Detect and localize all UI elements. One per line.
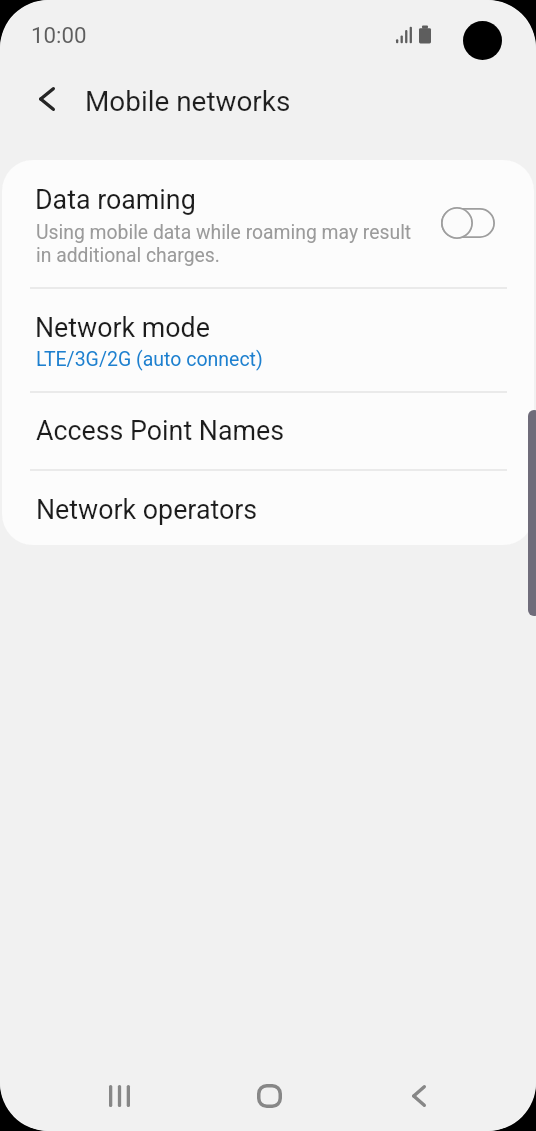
button[interactable]: Recent apps [59,1066,179,1126]
button[interactable]: Network operators [2,470,534,545]
button[interactable]: Data roaming switch, off [430,194,506,252]
staticText: Access Point Names [36,415,285,446]
button[interactable]: Data roaming [2,160,534,287]
staticText: Data roaming [35,184,196,215]
staticText: Network mode [35,312,210,343]
button[interactable]: Back [359,1066,479,1126]
staticText: Network operators [36,494,258,525]
button[interactable]: Access Point Names [2,392,534,469]
button[interactable]: Network mode [2,288,534,391]
button[interactable]: Navigate up [26,77,68,121]
staticText: Mobile networks [85,85,291,118]
staticText: Using mobile data while roaming may resu… [36,221,412,267]
staticText: 10:00 [31,22,87,48]
button[interactable]: Home [209,1066,329,1126]
staticText: LTE/3G/2G (auto connect) [36,348,263,371]
